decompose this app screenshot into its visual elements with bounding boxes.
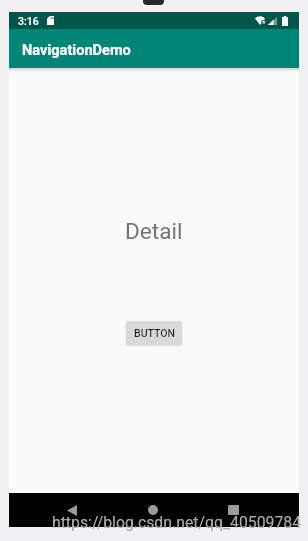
button[interactable]: BUTTON: [126, 321, 182, 345]
button[interactable]: Home: [135, 493, 171, 527]
staticText: BUTTON: [134, 327, 175, 339]
button[interactable]: Recents: [215, 493, 251, 527]
staticText: https://blog.csdn.net/qq_40509784: [52, 513, 302, 532]
staticText: NavigationDemo: [22, 41, 131, 58]
staticText: Detail: [125, 218, 183, 244]
staticText: 3:16: [18, 15, 39, 27]
button[interactable]: Back: [54, 493, 90, 527]
